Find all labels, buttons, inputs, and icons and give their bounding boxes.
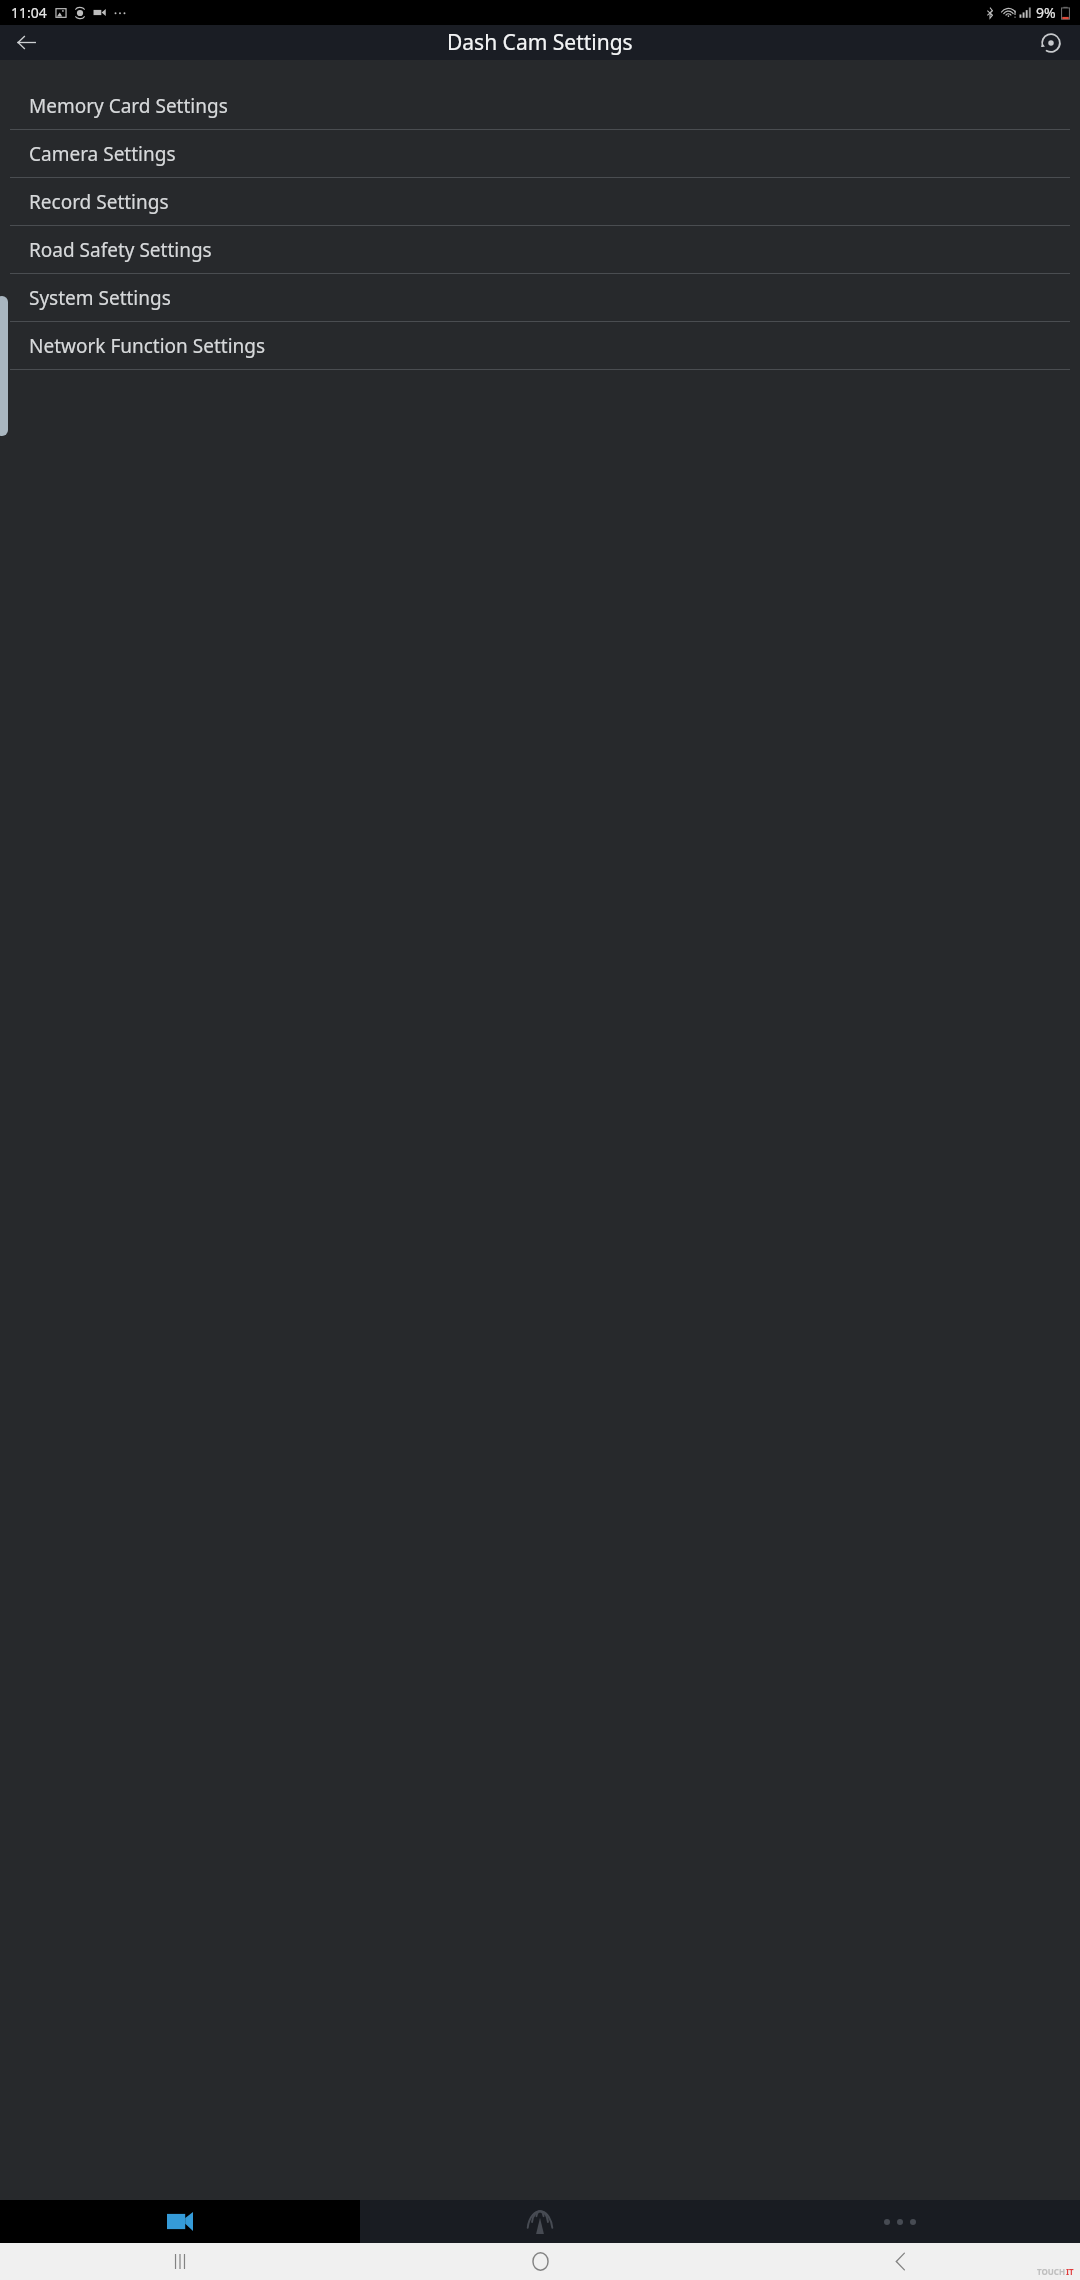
staticText: Camera Settings (29, 141, 176, 167)
button[interactable]: Road Safety Settings (0, 226, 1080, 274)
staticText: Record Settings (29, 189, 169, 215)
button[interactable]: Network Function Settings (0, 322, 1080, 370)
button[interactable]: Back (8, 25, 44, 60)
button[interactable]: Back (720, 2243, 1080, 2280)
button[interactable]: Recent apps (0, 2243, 360, 2280)
staticText: Memory Card Settings (29, 93, 228, 119)
staticText: System Settings (29, 285, 171, 311)
staticText: TOUCH (1037, 2266, 1066, 2277)
button[interactable]: Record Settings (0, 178, 1080, 226)
button[interactable]: Recording (0, 2200, 360, 2243)
staticText: Dash Cam Settings (447, 28, 633, 57)
button[interactable]: Reset settings (1032, 25, 1070, 60)
button[interactable]: Memory Card Settings (0, 82, 1080, 130)
staticText: Network Function Settings (29, 333, 266, 359)
staticText: IT (1066, 2266, 1074, 2277)
button[interactable]: Home (360, 2243, 720, 2280)
button[interactable]: System Settings (0, 274, 1080, 322)
staticText: 9% (1036, 3, 1056, 22)
button[interactable]: More options (720, 2200, 1080, 2243)
staticText: 11:04 (11, 3, 47, 22)
staticText: Road Safety Settings (29, 237, 212, 263)
button[interactable]: Live stream (360, 2200, 720, 2243)
button[interactable]: Camera Settings (0, 130, 1080, 178)
